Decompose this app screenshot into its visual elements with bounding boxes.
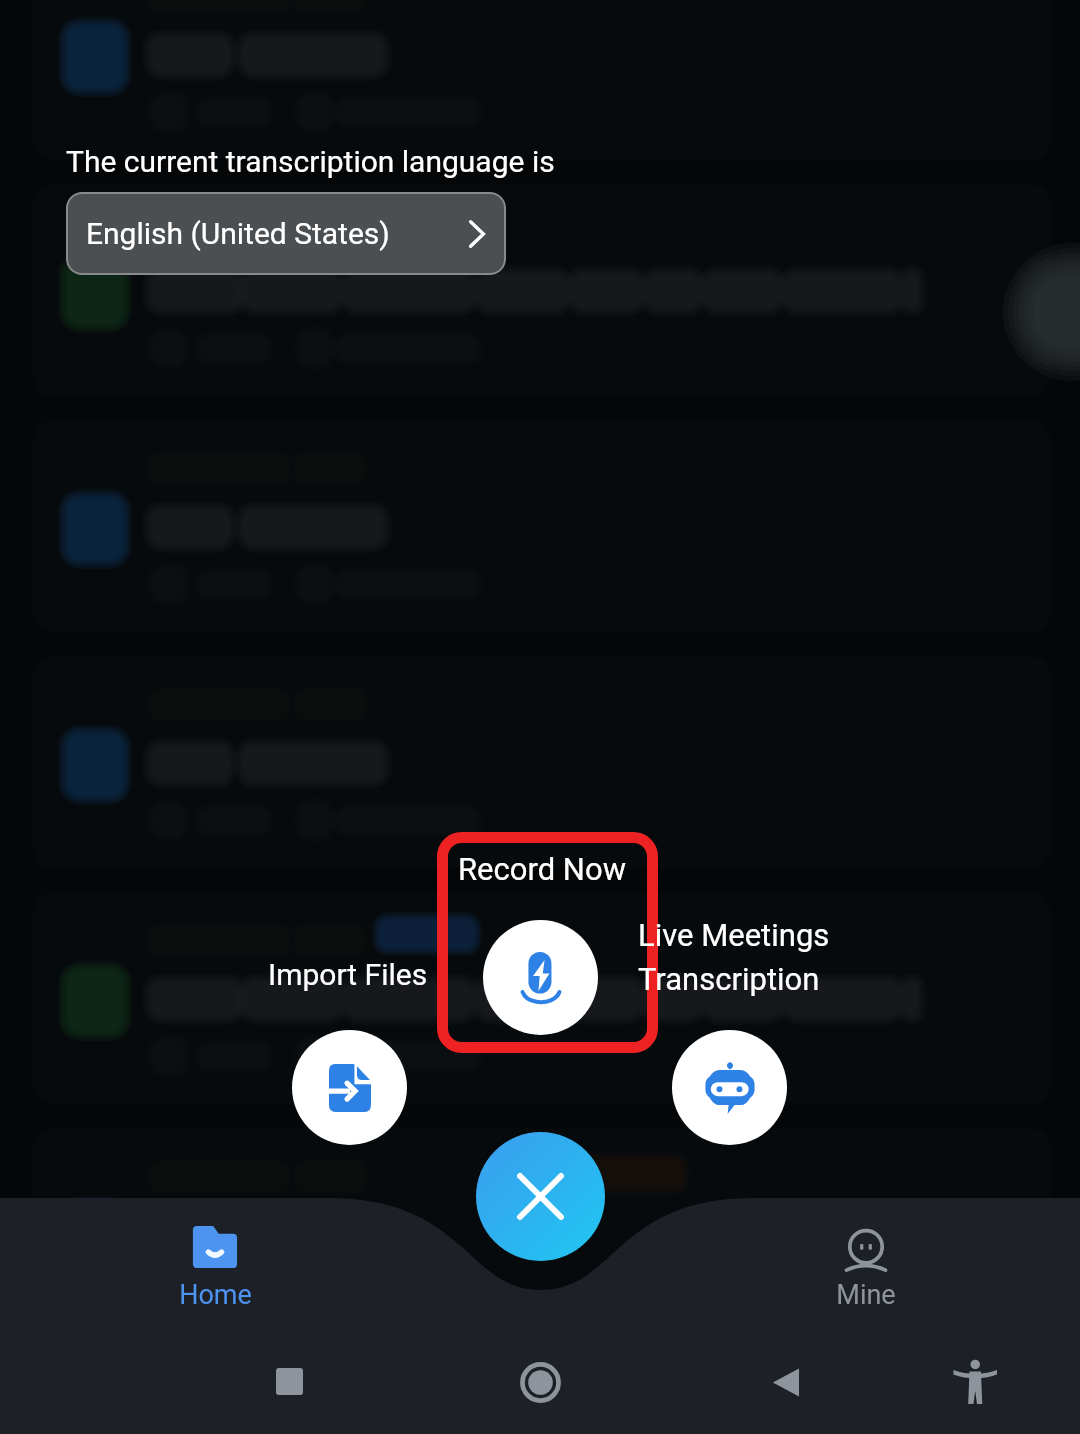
staticText: Mine <box>836 1279 896 1311</box>
staticText: English (United States) <box>86 216 390 251</box>
button[interactable]: English (United States) <box>66 192 506 275</box>
button[interactable]: Home <box>150 1225 280 1311</box>
button[interactable]: Import Files <box>292 1030 407 1145</box>
button[interactable]: Recent apps <box>276 1368 303 1395</box>
staticText: Live Meetings Transcription <box>638 917 830 997</box>
button[interactable]: Mine <box>801 1225 931 1311</box>
staticText: Import Files <box>268 957 428 992</box>
staticText: Record Now <box>458 851 626 887</box>
button[interactable]: Close actions <box>476 1132 605 1261</box>
button[interactable]: Live Meetings Transcription <box>672 1030 787 1145</box>
button[interactable]: Accessibility <box>953 1360 997 1404</box>
staticText: The current transcription language is <box>66 144 555 179</box>
button[interactable]: Back <box>772 1368 799 1397</box>
button[interactable]: Home <box>520 1362 561 1403</box>
button[interactable]: Record Now <box>483 920 598 1035</box>
staticText: Home <box>179 1279 252 1311</box>
